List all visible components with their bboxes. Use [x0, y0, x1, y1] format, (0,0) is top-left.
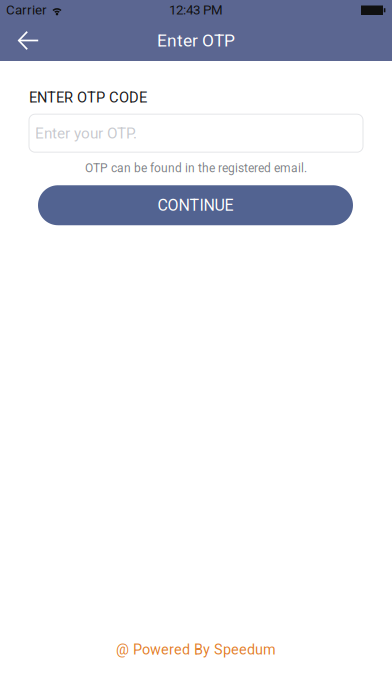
staticText: CONTINUE [157, 196, 233, 215]
staticText: Enter your OTP. [35, 124, 137, 142]
staticText: Carrier [6, 2, 47, 18]
staticText: OTP can be found in the registered email… [85, 161, 307, 175]
button[interactable]: Back [0, 20, 58, 61]
staticText: 12:43 PM [169, 2, 223, 18]
button[interactable]: Enter your OTP. [29, 114, 363, 152]
staticText: ENTER OTP CODE [29, 89, 147, 106]
staticText: Enter OTP [157, 30, 235, 51]
button[interactable]: CONTINUE [38, 185, 353, 225]
staticText: @ Powered By Speedum [116, 641, 276, 658]
